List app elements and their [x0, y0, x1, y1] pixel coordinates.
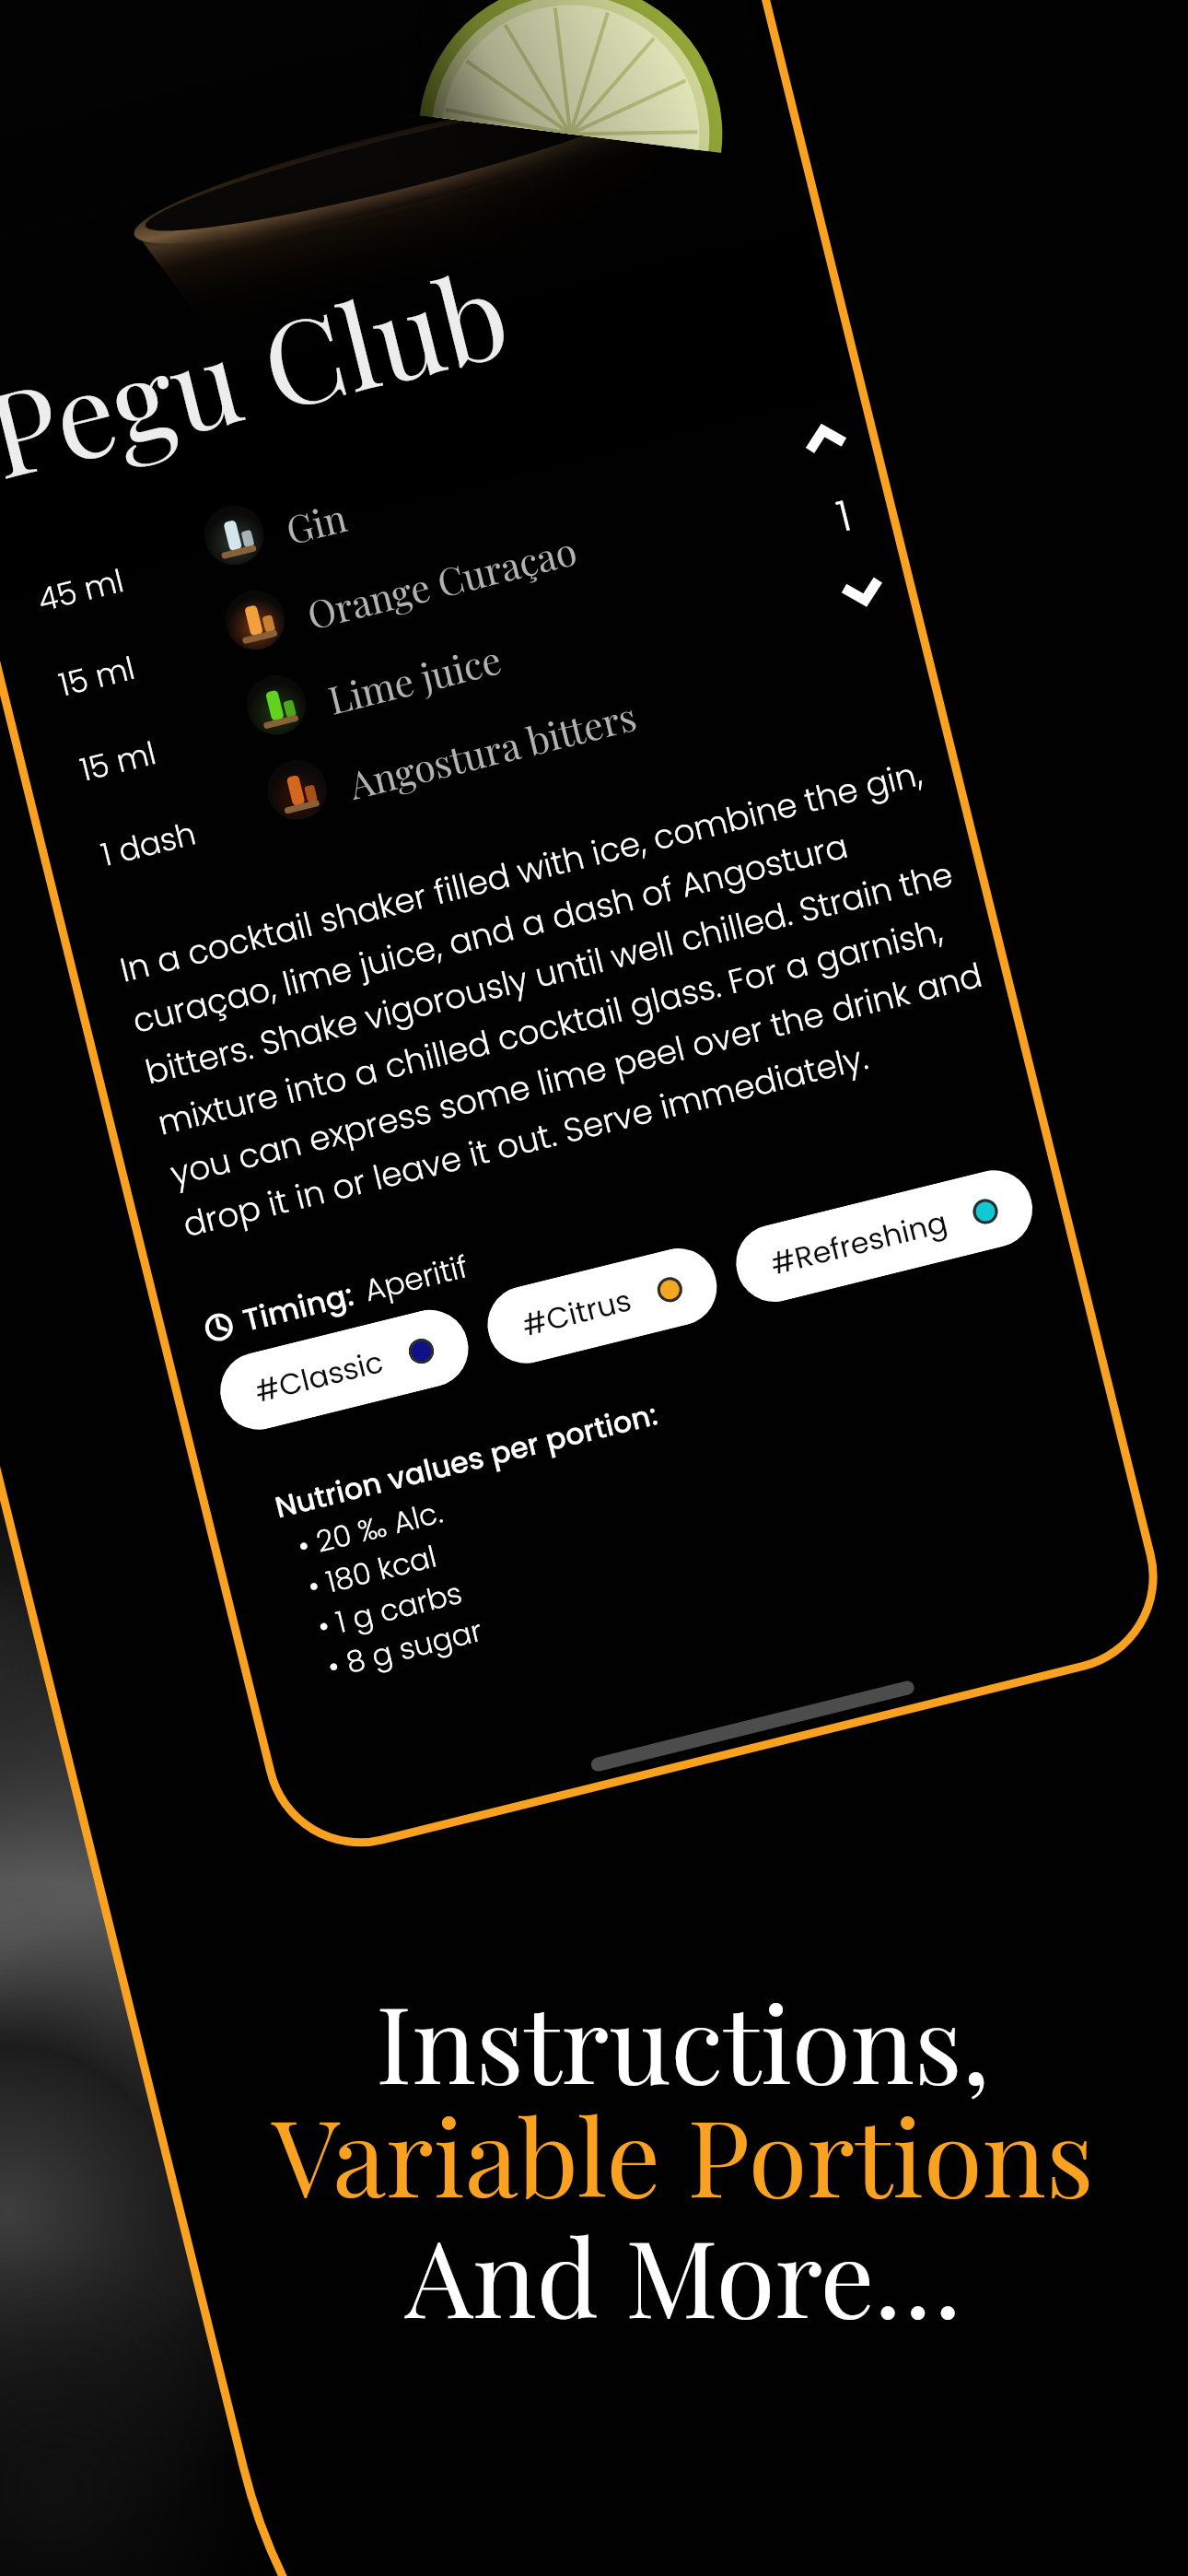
- staticText: • 20 ‰ Alc.: [294, 1491, 447, 1567]
- staticText: • 8 g sugar: [323, 1609, 486, 1688]
- button[interactable]: #Citrus: [479, 1240, 725, 1372]
- staticText: • 1 g carbs: [313, 1572, 466, 1647]
- staticText: Angostura bitters: [344, 690, 641, 810]
- staticText: Variable Portions: [272, 2081, 1094, 2224]
- staticText: Pegu Club: [0, 231, 522, 509]
- staticText: In a cocktail shaker filled with ice, co…: [115, 746, 1005, 1248]
- button[interactable]: #Refreshing: [728, 1162, 1041, 1310]
- button[interactable]: Change number of portions: [801, 421, 887, 609]
- staticText: 45 ml: [34, 558, 128, 622]
- staticText: And More…: [405, 2202, 961, 2345]
- button[interactable]: #Classic: [212, 1302, 476, 1438]
- staticText: 15 ml: [55, 646, 139, 707]
- staticText: • 180 kcal: [303, 1535, 441, 1607]
- button[interactable]: Timing:: [200, 1245, 472, 1351]
- staticText: #Refreshing: [766, 1201, 952, 1285]
- staticText: #Citrus: [518, 1279, 636, 1346]
- staticText: 15 ml: [76, 731, 160, 792]
- staticText: Nutrion values per portion:: [271, 1393, 662, 1528]
- staticText: #Classic: [250, 1341, 387, 1412]
- staticText: Lime juice: [323, 633, 506, 725]
- staticText: Gin: [281, 491, 352, 555]
- staticText: Orange Curaçao: [302, 524, 581, 640]
- staticText: Timing:: [238, 1273, 359, 1341]
- staticText: 1: [831, 486, 858, 546]
- staticText: 1 dash: [97, 811, 201, 877]
- staticText: Aperitif: [360, 1245, 472, 1311]
- staticText: Instructions,: [376, 1968, 990, 2111]
